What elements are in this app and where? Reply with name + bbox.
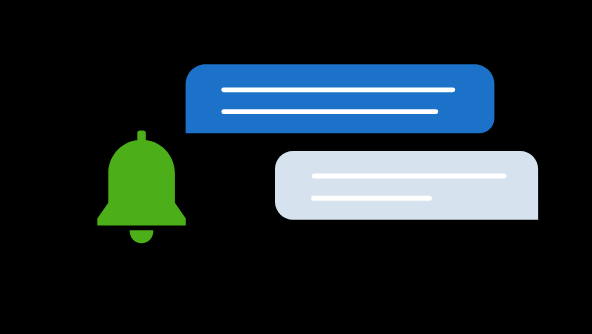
button[interactable]: Notifications [97,131,186,243]
button[interactable]: Message bubble [186,64,495,133]
button[interactable]: Reply bubble [275,151,538,220]
